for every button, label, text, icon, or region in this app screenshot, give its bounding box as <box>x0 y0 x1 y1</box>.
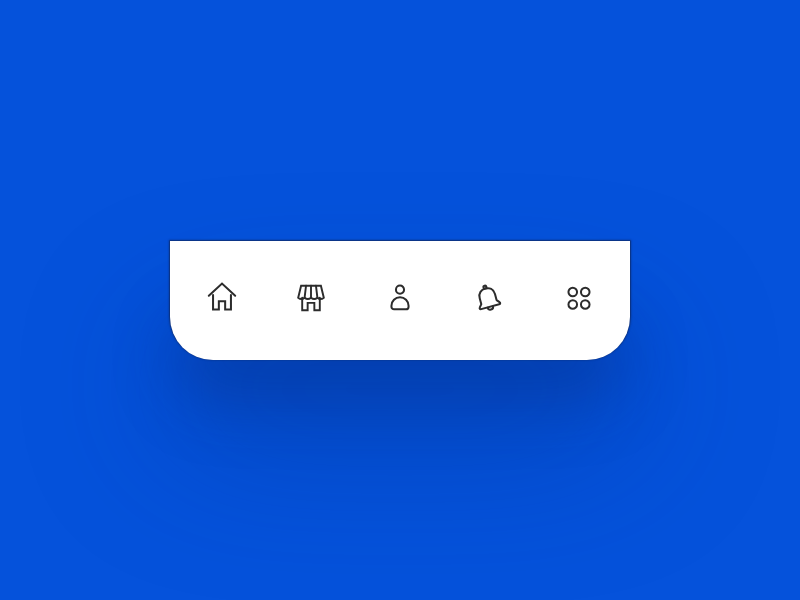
button[interactable]: Home <box>177 240 266 360</box>
button[interactable]: Apps <box>534 240 623 360</box>
button[interactable]: Notifications <box>445 240 534 360</box>
button[interactable]: Profile <box>355 240 444 360</box>
button[interactable]: Store <box>266 240 355 360</box>
